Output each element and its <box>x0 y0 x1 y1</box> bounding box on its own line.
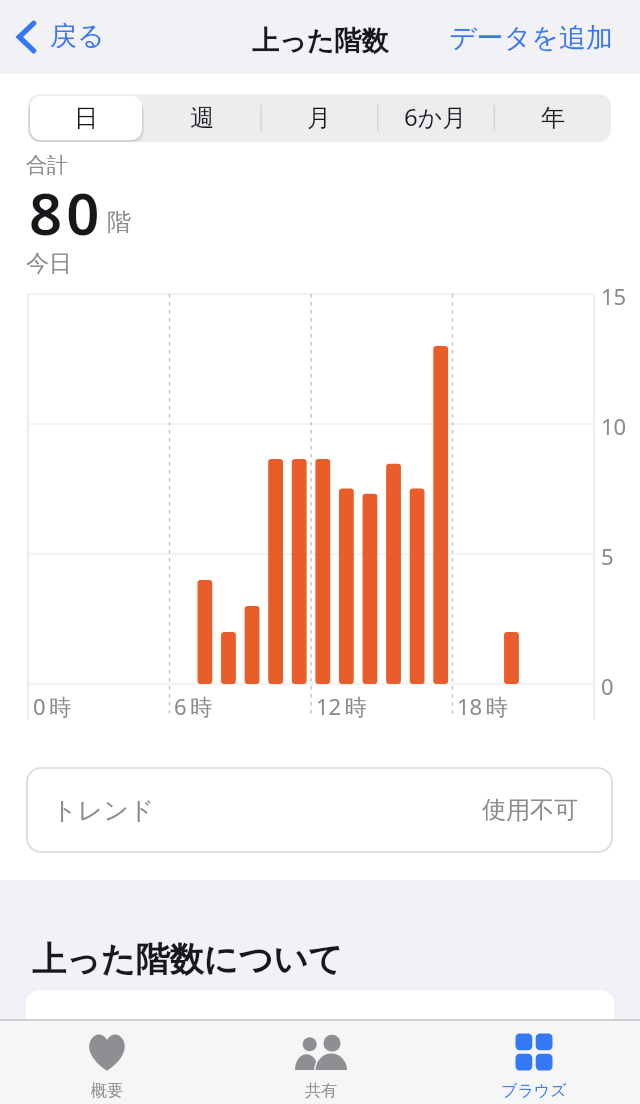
staticText: 共有 <box>305 1081 337 1101</box>
staticText: 80 <box>29 173 104 252</box>
staticText: 年 <box>541 103 565 133</box>
staticText: 日 <box>74 103 98 133</box>
button[interactable]: 月 <box>260 94 377 142</box>
button[interactable]: 共有 <box>214 1021 427 1104</box>
staticText: 5 <box>601 541 614 571</box>
staticText: 月 <box>307 103 331 133</box>
staticText: 6か月 <box>404 100 467 133</box>
staticText: 合計 <box>26 152 68 178</box>
staticText: 12 時 <box>316 691 367 721</box>
staticText: 週 <box>190 103 214 133</box>
staticText: ブラウズ <box>501 1081 567 1101</box>
button[interactable]: データを追加 <box>434 12 628 66</box>
staticText: 18 時 <box>457 691 508 721</box>
button[interactable]: トレンド <box>27 768 612 852</box>
button[interactable]: 週 <box>144 94 260 142</box>
staticText: 戻る <box>50 19 105 53</box>
staticText: 0 時 <box>33 691 72 721</box>
staticText: 6 時 <box>174 691 213 721</box>
staticText: データを追加 <box>449 21 613 55</box>
staticText: トレンド <box>52 795 155 826</box>
staticText: 上った階数について <box>32 938 343 981</box>
button[interactable] <box>26 990 614 1030</box>
staticText: 0 <box>601 671 614 701</box>
staticText: 使用不可 <box>482 795 578 825</box>
button[interactable]: 日 <box>28 94 144 142</box>
button[interactable]: 概要 <box>0 1021 214 1104</box>
staticText: 概要 <box>91 1081 123 1101</box>
button[interactable]: 戻る <box>4 10 119 64</box>
staticText: 10 <box>601 411 627 441</box>
button[interactable]: ブラウズ <box>427 1021 640 1104</box>
staticText: 15 <box>601 281 627 311</box>
button[interactable]: 年 <box>494 94 611 142</box>
button[interactable]: 6か月 <box>377 94 494 142</box>
staticText: 階 <box>107 207 131 237</box>
staticText: 上った階数 <box>252 24 389 58</box>
staticText: 今日 <box>26 249 72 278</box>
